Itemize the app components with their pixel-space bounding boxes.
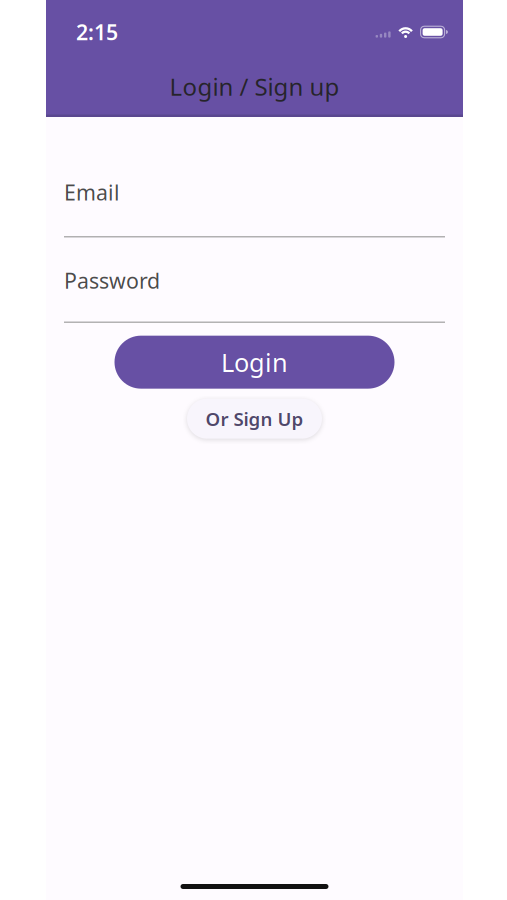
button[interactable]: Login: [114, 336, 394, 389]
staticText: 2:15: [76, 18, 118, 46]
button[interactable]: Password: [46, 266, 463, 323]
staticText: Password: [64, 266, 160, 295]
staticText: Login: [221, 345, 288, 379]
button[interactable]: Email: [46, 178, 463, 237]
button[interactable]: Or Sign Up: [187, 399, 322, 439]
staticText: Login / Sign up: [169, 71, 339, 102]
staticText: Or Sign Up: [205, 406, 303, 431]
staticText: Email: [64, 178, 120, 206]
